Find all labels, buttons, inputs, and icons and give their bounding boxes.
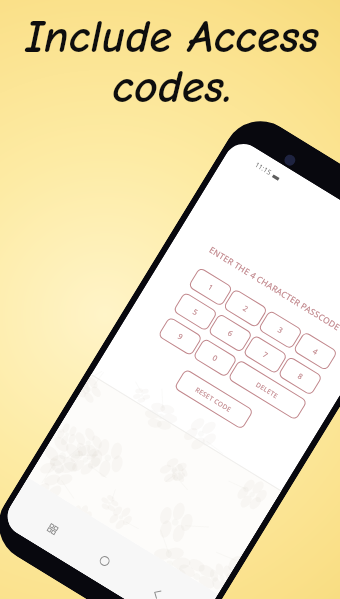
button[interactable]: 2: [223, 289, 267, 328]
staticText: Include Access codes.: [2, 11, 340, 114]
button[interactable]: 0: [193, 338, 237, 377]
staticText: 9: [176, 331, 185, 342]
staticText: 8: [296, 371, 305, 382]
staticText: 11:15: [253, 160, 273, 178]
staticText: 5: [191, 306, 200, 317]
button[interactable]: Recents: [43, 519, 62, 539]
button[interactable]: 7: [243, 335, 287, 374]
button[interactable]: 1: [188, 268, 232, 306]
button[interactable]: DELETE: [228, 360, 307, 420]
button[interactable]: 4: [293, 332, 337, 370]
staticText: 1: [206, 282, 216, 293]
button[interactable]: 6: [208, 314, 252, 352]
button[interactable]: Back: [147, 583, 166, 599]
button[interactable]: Home: [94, 550, 116, 572]
button[interactable]: 3: [258, 310, 302, 349]
staticText: 6: [226, 328, 235, 339]
staticText: 0: [211, 352, 220, 364]
staticText: 7: [261, 349, 270, 360]
staticText: 2: [241, 303, 251, 314]
button[interactable]: 8: [278, 357, 322, 395]
staticText: 4: [311, 346, 320, 357]
button[interactable]: 5: [173, 292, 217, 331]
staticText: ENTER THE 4 CHARACTER PASSCODE: [176, 225, 340, 352]
button[interactable]: 9: [158, 317, 202, 356]
staticText: 3: [276, 324, 286, 335]
button[interactable]: RESET CODE: [174, 369, 253, 429]
staticText: RESET CODE: [194, 385, 233, 414]
staticText: DELETE: [254, 380, 280, 401]
